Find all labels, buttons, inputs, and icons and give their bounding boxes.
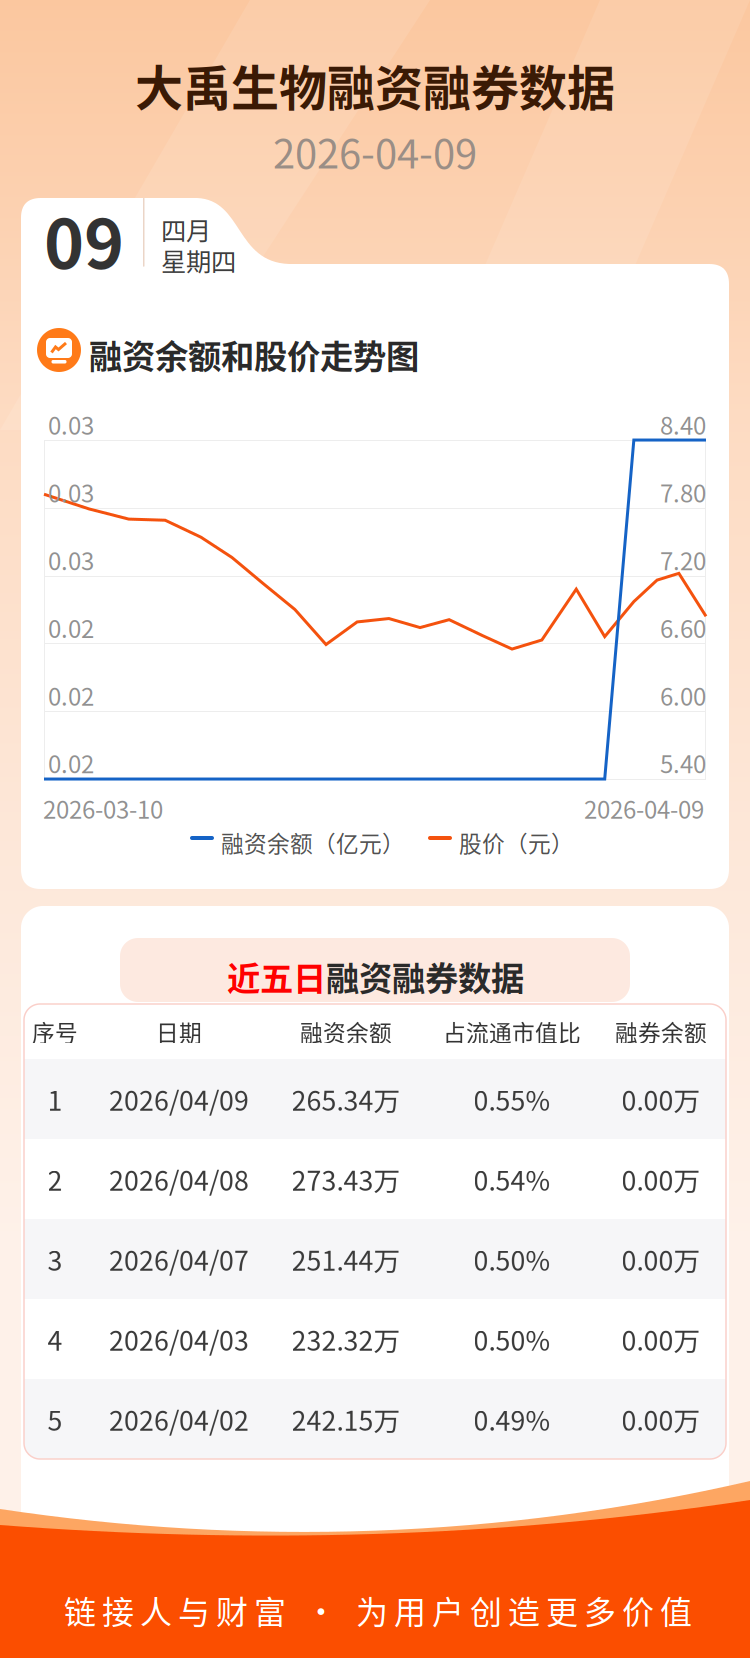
staticText: 2026-04-09: [584, 791, 704, 826]
staticText: 0.00万: [621, 1240, 700, 1278]
staticText: 2026/04/08: [109, 1160, 249, 1198]
staticText: 近五日: [227, 952, 326, 1000]
staticText: 0.03: [48, 407, 94, 442]
staticText: 融资余额: [300, 1015, 392, 1048]
staticText: 0.49%: [473, 1400, 550, 1438]
staticText: 2026-03-10: [43, 791, 163, 826]
staticText: 7.20: [660, 542, 706, 577]
staticText: 0.02: [48, 745, 94, 780]
staticText: 5.40: [660, 745, 706, 780]
staticText: 2026/04/02: [109, 1400, 249, 1438]
staticText: 242.15万: [291, 1400, 400, 1438]
staticText: 大禹生物融资融券数据: [135, 50, 615, 119]
staticText: 6.60: [660, 610, 706, 645]
staticText: 0.03: [48, 542, 94, 577]
staticText: 3: [47, 1240, 62, 1278]
staticText: 1: [47, 1080, 62, 1118]
staticText: 0.00万: [621, 1080, 700, 1118]
staticText: 4: [47, 1320, 62, 1358]
staticText: 日期: [156, 1015, 202, 1048]
staticText: 星期四: [161, 242, 236, 278]
staticText: 0.54%: [473, 1160, 550, 1198]
staticText: 0.50%: [473, 1320, 550, 1358]
staticText: 273.43万: [291, 1160, 400, 1198]
staticText: 融券余额: [615, 1015, 707, 1048]
staticText: 2026/04/07: [109, 1240, 249, 1278]
staticText: 7.80: [660, 475, 706, 509]
staticText: 0.03: [48, 475, 94, 509]
staticText: 6.00: [660, 678, 706, 713]
staticText: 2026/04/09: [109, 1080, 249, 1118]
staticText: 0.00万: [621, 1400, 700, 1438]
staticText: 0.00万: [621, 1160, 700, 1198]
staticText: 2026-04-09: [273, 122, 477, 180]
staticText: 8.40: [660, 407, 706, 442]
staticText: 251.44万: [291, 1240, 400, 1278]
staticText: 2026/04/03: [109, 1320, 249, 1358]
staticText: 融资融券数据: [326, 952, 524, 1000]
staticText: 0.02: [48, 610, 94, 645]
staticText: 股价（元）: [459, 826, 574, 859]
staticText: 2: [47, 1160, 62, 1198]
staticText: 0.02: [48, 678, 94, 713]
staticText: 5: [47, 1400, 62, 1438]
staticText: 序号: [32, 1015, 78, 1048]
staticText: 232.32万: [291, 1320, 400, 1358]
staticText: 占流通市值比: [443, 1015, 581, 1048]
staticText: 融资余额和股价走势图: [89, 330, 419, 378]
staticText: 0.55%: [473, 1080, 550, 1118]
staticText: 四月: [161, 211, 211, 247]
staticText: 融资余额（亿元）: [221, 826, 405, 859]
staticText: 链接人与财富 · 为用户创造更多价值: [64, 1587, 692, 1633]
staticText: 0.00万: [621, 1320, 700, 1358]
staticText: 0.50%: [473, 1240, 550, 1278]
staticText: 265.34万: [291, 1080, 400, 1118]
staticText: 09: [44, 190, 124, 288]
